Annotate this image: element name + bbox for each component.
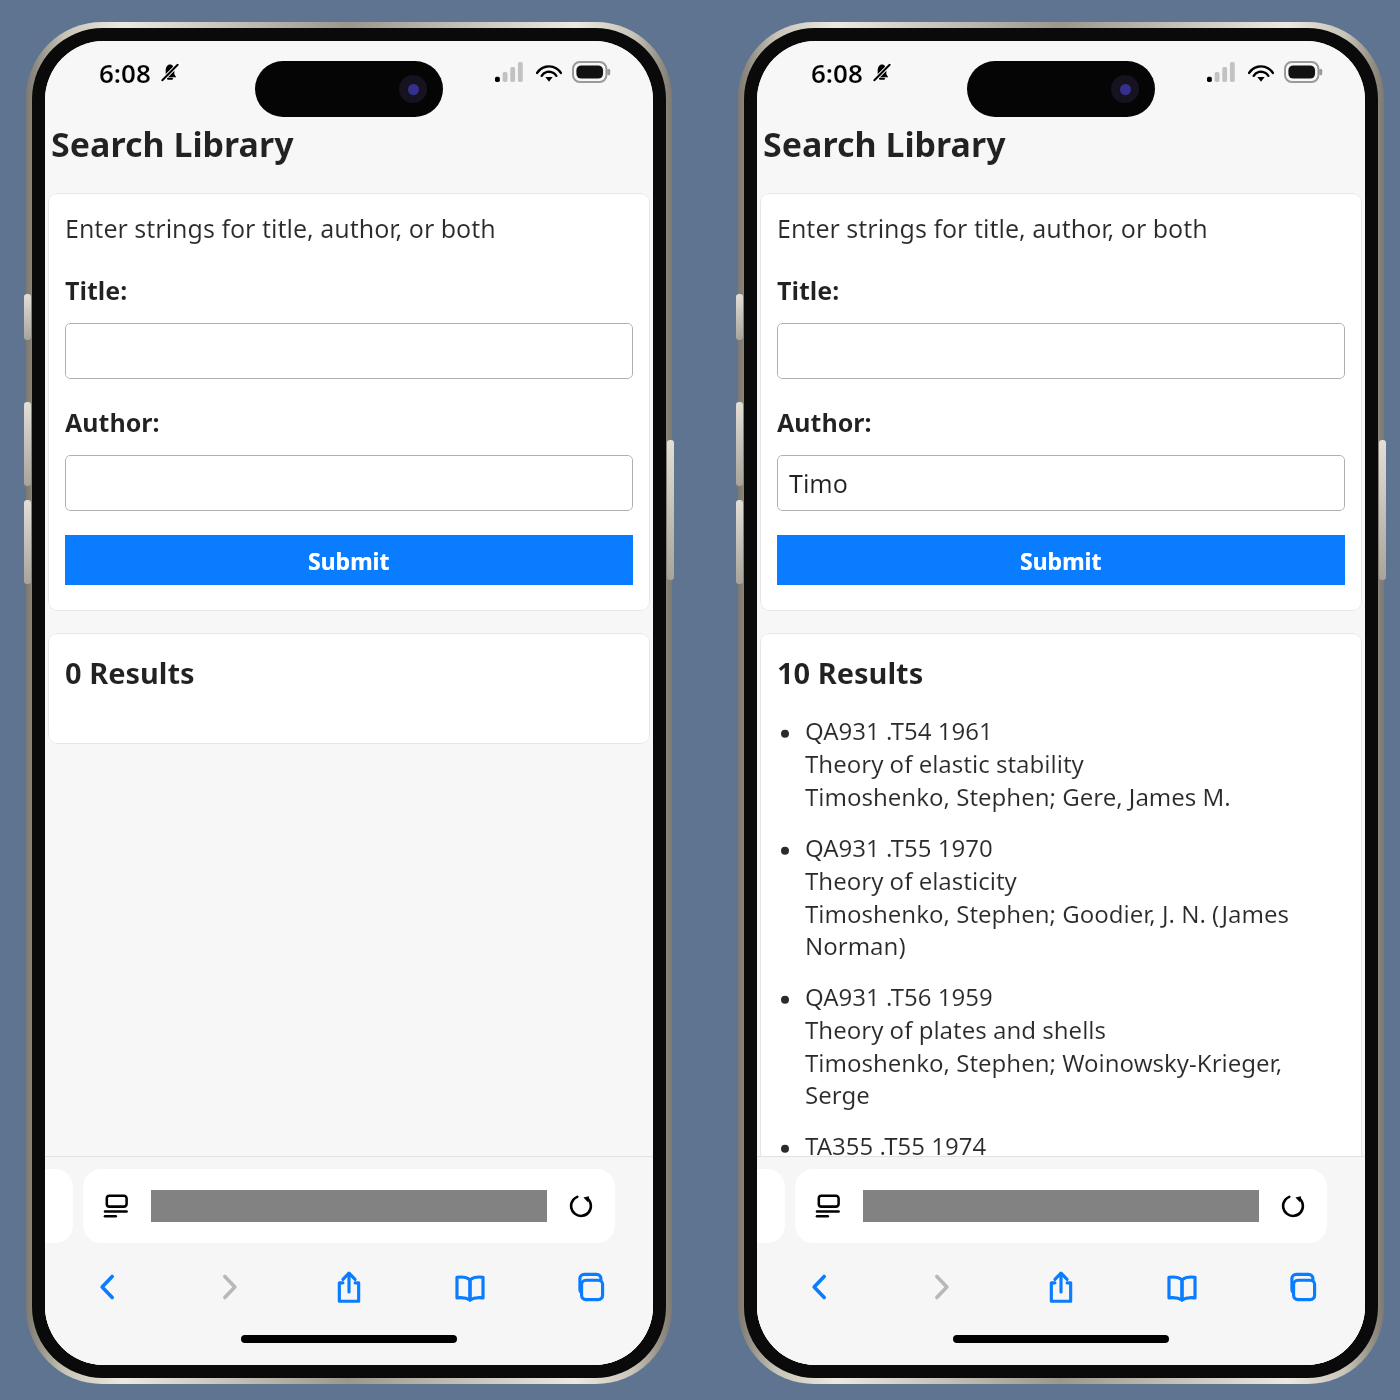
button[interactable] (777, 323, 1345, 379)
button[interactable]: Reload (1277, 1190, 1309, 1222)
staticText: Timo (789, 466, 848, 500)
staticText: Search Library (763, 121, 1006, 167)
button[interactable]: Share (316, 1259, 382, 1315)
staticText: 0 Results (65, 653, 195, 692)
staticText: TA355 .T55 1974 (805, 1129, 987, 1162)
staticText: Author: (777, 405, 872, 439)
staticText: (Donovan Harold) (805, 1260, 1004, 1293)
staticText: Theory of elastic stability (805, 747, 1084, 780)
staticText: 6:08 (99, 55, 151, 90)
staticText: QA931 .T55 1970 (805, 831, 993, 864)
staticText: Timoshenko, Stephen; Goodier, J. N. (Jam… (805, 897, 1345, 962)
staticText: Theory of elasticity (805, 864, 1017, 897)
button[interactable]: Forward (908, 1259, 974, 1315)
staticText: Submit (1020, 545, 1102, 576)
button[interactable]: Bookmarks (437, 1259, 503, 1315)
staticText: Enter strings for title, author, or both (777, 211, 1208, 245)
button[interactable]: Page settings (795, 1169, 1327, 1243)
button[interactable]: Submit (65, 535, 633, 585)
staticText: Search Library (51, 121, 294, 167)
staticText: Title: (777, 273, 840, 307)
button[interactable]: Bookmarks (1149, 1259, 1215, 1315)
staticText: Timoshenko, Stephen; Woinowsky-Krieger, … (805, 1046, 1345, 1111)
staticText: Timoshenko, Stephen; Gere, James M. (805, 780, 1231, 813)
button[interactable]: Share (1028, 1259, 1094, 1315)
staticText: Enter strings for title, author, or both (65, 211, 496, 245)
staticText: Vibration problems in engineering (805, 1162, 1192, 1195)
staticText: Title: (65, 273, 128, 307)
button[interactable]: Tabs (1269, 1259, 1335, 1315)
button[interactable]: Forward (196, 1259, 262, 1315)
button[interactable]: Page settings (83, 1169, 615, 1243)
staticText: Theory of plates and shells (805, 1013, 1107, 1046)
button[interactable]: Timo (777, 455, 1345, 511)
button[interactable] (65, 323, 633, 379)
staticText: Timoshenko, Stephen; Weaver, William; Yo… (805, 1195, 1345, 1260)
button[interactable]: Back (75, 1259, 141, 1315)
button[interactable]: Back (787, 1259, 853, 1315)
staticText: 6:08 (811, 55, 863, 90)
button[interactable]: Reload (565, 1190, 597, 1222)
button[interactable]: Tabs (557, 1259, 623, 1315)
button[interactable]: Submit (777, 535, 1345, 585)
staticText: QA931 .T56 1959 (805, 980, 993, 1013)
staticText: 10 Results (777, 653, 924, 692)
staticText: QA931 .T54 1961 (805, 714, 993, 747)
button[interactable]: Page settings (101, 1190, 133, 1222)
button[interactable]: Page settings (813, 1190, 845, 1222)
staticText: Author: (65, 405, 160, 439)
staticText: Submit (308, 545, 390, 576)
button[interactable] (65, 455, 633, 511)
